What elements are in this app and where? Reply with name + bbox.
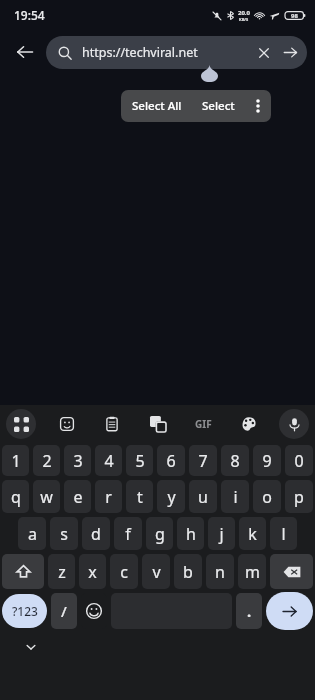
- staticText: y: [167, 486, 176, 508]
- button[interactable]: .: [236, 593, 262, 629]
- staticText: 8: [230, 450, 240, 472]
- staticText: e: [73, 486, 83, 508]
- button[interactable]: g: [146, 517, 173, 550]
- staticText: d: [91, 523, 101, 545]
- staticText: j: [219, 523, 224, 545]
- button[interactable]: c: [110, 554, 138, 589]
- button[interactable]: https://techviral.net: [46, 36, 307, 69]
- button[interactable]: Clipboard: [97, 409, 127, 439]
- button[interactable]: n: [206, 554, 234, 589]
- staticText: z: [58, 561, 66, 583]
- staticText: v: [152, 561, 161, 583]
- staticText: 3: [73, 450, 83, 472]
- button[interactable]: 9: [253, 445, 281, 476]
- button[interactable]: x: [79, 554, 106, 589]
- button[interactable]: More options: [244, 90, 271, 122]
- staticText: o: [262, 486, 272, 508]
- button[interactable]: Themes: [234, 409, 264, 439]
- button[interactable]: Back: [8, 35, 42, 69]
- staticText: 98: [291, 12, 298, 20]
- button[interactable]: 7: [189, 445, 217, 476]
- button[interactable]: /: [51, 593, 77, 629]
- button[interactable]: Shift: [2, 554, 44, 589]
- staticText: g: [155, 523, 165, 545]
- staticText: Select All: [132, 98, 182, 114]
- button[interactable]: o: [253, 480, 281, 513]
- staticText: p: [294, 486, 304, 508]
- staticText: s: [60, 523, 68, 545]
- button[interactable]: ?123: [2, 594, 47, 628]
- button[interactable]: h: [177, 517, 204, 550]
- button[interactable]: 1: [2, 445, 29, 476]
- staticText: t: [137, 486, 143, 508]
- button[interactable]: m: [238, 554, 266, 589]
- staticText: 4: [104, 450, 114, 472]
- staticText: r: [105, 486, 112, 508]
- staticText: b: [183, 561, 193, 583]
- staticText: a: [28, 523, 37, 545]
- button[interactable]: Go: [276, 38, 305, 67]
- button[interactable]: a: [18, 517, 46, 550]
- button[interactable]: d: [82, 517, 110, 550]
- staticText: x: [88, 561, 97, 583]
- button[interactable]: 0: [285, 445, 313, 476]
- button[interactable]: 2: [33, 445, 60, 476]
- button[interactable]: 4: [95, 445, 122, 476]
- button[interactable]: r: [95, 480, 122, 513]
- button[interactable]: s: [50, 517, 78, 550]
- button[interactable]: w: [33, 480, 60, 513]
- staticText: q: [11, 486, 21, 508]
- staticText: u: [198, 486, 208, 508]
- staticText: 0: [294, 450, 304, 472]
- button[interactable]: 3: [64, 445, 91, 476]
- staticText: 5: [135, 450, 145, 472]
- button[interactable]: f: [114, 517, 142, 550]
- button[interactable]: 5: [126, 445, 153, 476]
- staticText: 1: [11, 450, 21, 472]
- staticText: /: [61, 601, 67, 621]
- button[interactable]: e: [64, 480, 91, 513]
- button[interactable]: y: [157, 480, 185, 513]
- button[interactable]: Select All: [121, 90, 193, 122]
- staticText: ?123: [12, 603, 38, 619]
- button[interactable]: z: [48, 554, 75, 589]
- staticText: c: [120, 561, 128, 583]
- button[interactable]: Select: [193, 90, 244, 122]
- button[interactable]: l: [270, 517, 297, 550]
- button[interactable]: k: [239, 517, 266, 550]
- button[interactable]: t: [126, 480, 153, 513]
- staticText: n: [215, 561, 225, 583]
- button[interactable]: Stickers: [52, 409, 82, 439]
- button[interactable]: u: [189, 480, 217, 513]
- button[interactable]: b: [174, 554, 202, 589]
- button[interactable]: Hide keyboard: [19, 635, 43, 659]
- staticText: KB/S: [239, 17, 249, 22]
- staticText: h: [186, 523, 196, 545]
- staticText: l: [281, 523, 286, 545]
- button[interactable]: GIF: [188, 409, 218, 439]
- staticText: k: [248, 523, 257, 545]
- button[interactable]: j: [208, 517, 235, 550]
- staticText: m: [245, 561, 260, 583]
- staticText: 7: [198, 450, 208, 472]
- button[interactable]: i: [221, 480, 249, 513]
- button[interactable]: Backspace: [270, 554, 313, 589]
- button[interactable]: v: [142, 554, 170, 589]
- button[interactable]: Voice input: [279, 409, 309, 439]
- button[interactable]: 8: [221, 445, 249, 476]
- staticText: f: [125, 523, 131, 545]
- staticText: Select: [202, 98, 235, 114]
- staticText: i: [233, 486, 238, 508]
- button[interactable]: Emoji: [81, 593, 107, 629]
- staticText: 2: [42, 450, 52, 472]
- button[interactable]: p: [285, 480, 313, 513]
- button[interactable]: Keyboard switcher: [6, 409, 36, 439]
- button[interactable]: q: [2, 480, 29, 513]
- button[interactable]: Translate: [143, 409, 173, 439]
- button[interactable]: 6: [157, 445, 185, 476]
- staticText: 20.0: [238, 9, 250, 17]
- button[interactable]: Enter: [266, 592, 313, 630]
- staticText: 6: [166, 450, 176, 472]
- button[interactable]: Clear: [252, 41, 276, 65]
